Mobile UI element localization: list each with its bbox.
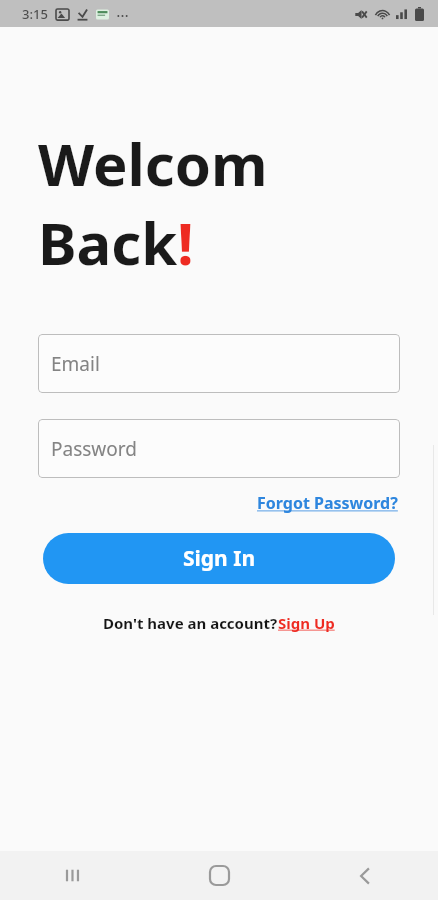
button[interactable]: Back [292, 851, 438, 900]
staticText: Sign In [183, 544, 256, 573]
staticText: Sign Up [278, 613, 335, 633]
button[interactable]: Password [38, 419, 400, 478]
button[interactable]: Email [38, 334, 400, 393]
staticText: Email [51, 351, 100, 377]
button[interactable]: Recent apps [0, 851, 146, 900]
button[interactable]: Sign Up [278, 613, 335, 633]
staticText: Welcom [38, 124, 268, 203]
button[interactable]: Sign In [43, 533, 395, 584]
staticText: Forgot Password? [257, 492, 398, 514]
staticText: Don't have an account? [103, 613, 278, 633]
button[interactable]: Home [146, 851, 292, 900]
button[interactable]: Forgot Password? [257, 492, 398, 514]
staticText: Back! [38, 203, 194, 282]
button[interactable]: Don't have an account? [103, 613, 278, 633]
staticText: 3:15 [22, 5, 48, 23]
staticText: Password [51, 436, 137, 462]
